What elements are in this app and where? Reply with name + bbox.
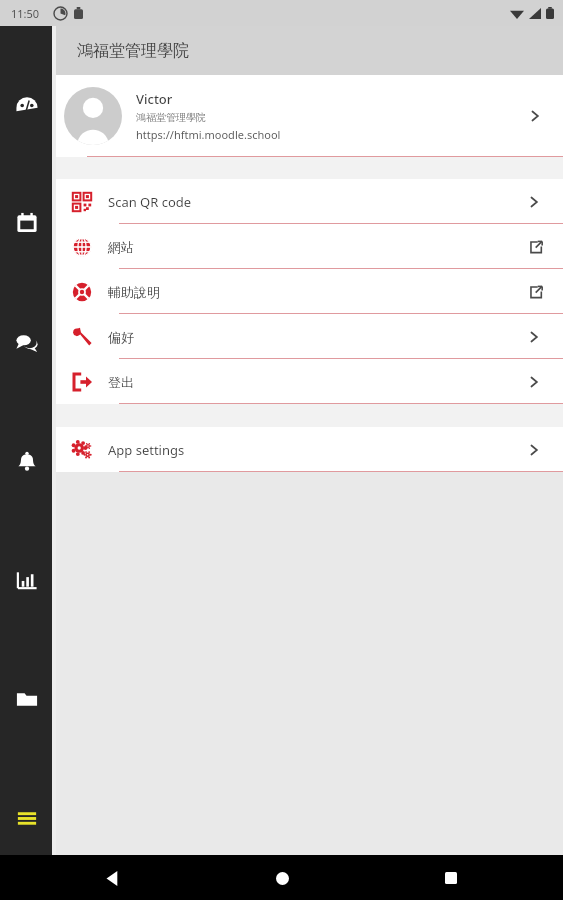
- button[interactable]: 網站: [56, 224, 563, 269]
- staticText: https://hftmi.moodle.school: [136, 127, 281, 142]
- button[interactable]: App settings: [56, 427, 563, 472]
- button[interactable]: Notifications: [5, 439, 49, 483]
- button[interactable]: Messages: [5, 320, 49, 364]
- button[interactable]: Files: [5, 677, 49, 721]
- staticText: Scan QR code: [108, 193, 526, 211]
- staticText: 輔助說明: [108, 284, 529, 300]
- button[interactable]: Victor: [56, 75, 563, 157]
- staticText: 登出: [108, 374, 526, 390]
- staticText: 鴻福堂管理學院: [136, 111, 206, 124]
- button[interactable]: 登出: [56, 359, 563, 404]
- button[interactable]: Calendar: [5, 201, 49, 245]
- button[interactable]: Back: [90, 856, 134, 900]
- button[interactable]: Grades: [5, 558, 49, 602]
- button[interactable]: More: [5, 796, 49, 840]
- staticText: 偏好: [108, 329, 526, 345]
- button[interactable]: 輔助說明: [56, 269, 563, 314]
- staticText: App settings: [108, 441, 526, 459]
- button[interactable]: 偏好: [56, 314, 563, 359]
- staticText: 鴻福堂管理學院: [77, 41, 189, 61]
- button[interactable]: Dashboard: [5, 82, 49, 126]
- staticText: Victor: [136, 90, 173, 108]
- button[interactable]: Scan QR code: [56, 179, 563, 224]
- staticText: 網站: [108, 239, 529, 255]
- button[interactable]: Home: [260, 856, 304, 900]
- staticText: 11:50: [11, 6, 40, 21]
- button[interactable]: Recent apps: [429, 856, 473, 900]
